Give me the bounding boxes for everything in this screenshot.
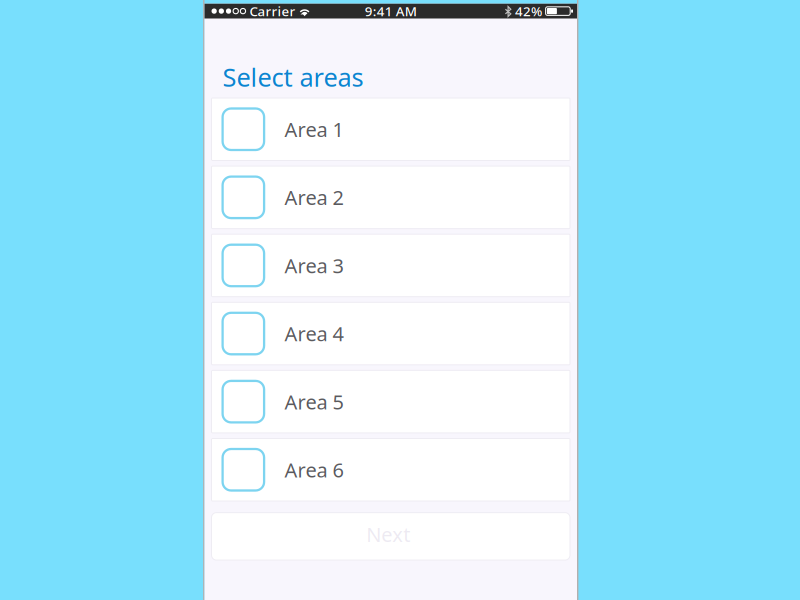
staticText: Area 5: [285, 388, 344, 415]
button[interactable]: Area 3: [211, 234, 570, 297]
staticText: Area 3: [285, 252, 344, 279]
button[interactable]: Area 1: [211, 98, 570, 160]
staticText: 42%: [515, 2, 542, 20]
button[interactable]: Area 5: [211, 370, 570, 433]
button[interactable]: Area 6: [211, 438, 570, 501]
staticText: Area 4: [285, 320, 344, 347]
staticText: 9:41 AM: [365, 2, 417, 20]
staticText: Area 1: [285, 116, 344, 143]
staticText: Area 2: [285, 184, 344, 211]
staticText: Area 6: [285, 456, 344, 483]
button[interactable]: Area 4: [211, 302, 570, 365]
button[interactable]: Area 2: [211, 166, 570, 229]
staticText: Carrier: [250, 2, 296, 20]
staticText: Select areas: [222, 60, 363, 94]
staticText: Next: [366, 521, 410, 548]
